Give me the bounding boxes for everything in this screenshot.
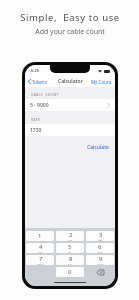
staticText: 1	[38, 232, 42, 240]
button[interactable]: Tokens	[25, 76, 50, 87]
staticText: 9	[99, 255, 103, 263]
staticText: 5 - 9900	[30, 102, 49, 109]
staticText: Calculate	[87, 144, 109, 151]
staticText: 5	[68, 243, 72, 251]
staticText: Tokens	[32, 79, 47, 85]
staticText: DEF	[98, 239, 103, 241]
staticText: PQRS	[37, 263, 44, 265]
staticText: JKL	[68, 251, 72, 253]
staticText: 3	[99, 231, 103, 239]
staticText: CABLE COUNT	[31, 92, 59, 97]
button[interactable]: Calculate	[81, 142, 115, 153]
button[interactable]: 4	[26, 243, 54, 253]
staticText: ABC	[68, 239, 73, 241]
staticText: Simple, Easy to use	[20, 11, 120, 24]
button[interactable]: 2	[56, 231, 84, 241]
staticText: 7	[39, 255, 43, 263]
staticText: TUV	[68, 263, 73, 265]
button[interactable]: Backspace	[86, 267, 114, 277]
button[interactable]: 7	[26, 255, 54, 265]
staticText: 0	[68, 268, 72, 276]
staticText: WXYZ	[97, 263, 104, 265]
button[interactable]: My Count	[88, 76, 115, 87]
staticText: 6:25	[31, 68, 39, 73]
button[interactable]: 9	[86, 255, 114, 265]
button[interactable]: 5	[56, 243, 84, 253]
staticText: Add your cable count	[35, 27, 105, 37]
staticText: My Count	[91, 79, 112, 85]
staticText: 8	[69, 255, 73, 263]
staticText: Calculator	[58, 78, 83, 85]
staticText: 6	[98, 243, 102, 251]
button[interactable]: 1730	[25, 124, 115, 136]
button[interactable]: 8	[56, 255, 84, 265]
staticText: 2	[69, 231, 73, 239]
staticText: MNO	[97, 251, 103, 253]
button[interactable]: 5 - 9900	[25, 99, 115, 111]
button[interactable]: 6	[86, 243, 114, 253]
button[interactable]: 3	[86, 231, 114, 241]
button[interactable]: 0	[56, 267, 84, 277]
staticText: GHI	[38, 251, 43, 253]
staticText: RATE	[31, 117, 41, 122]
staticText: 4	[39, 243, 43, 251]
staticText: 1730	[30, 127, 42, 134]
button[interactable]: 1	[26, 231, 54, 241]
